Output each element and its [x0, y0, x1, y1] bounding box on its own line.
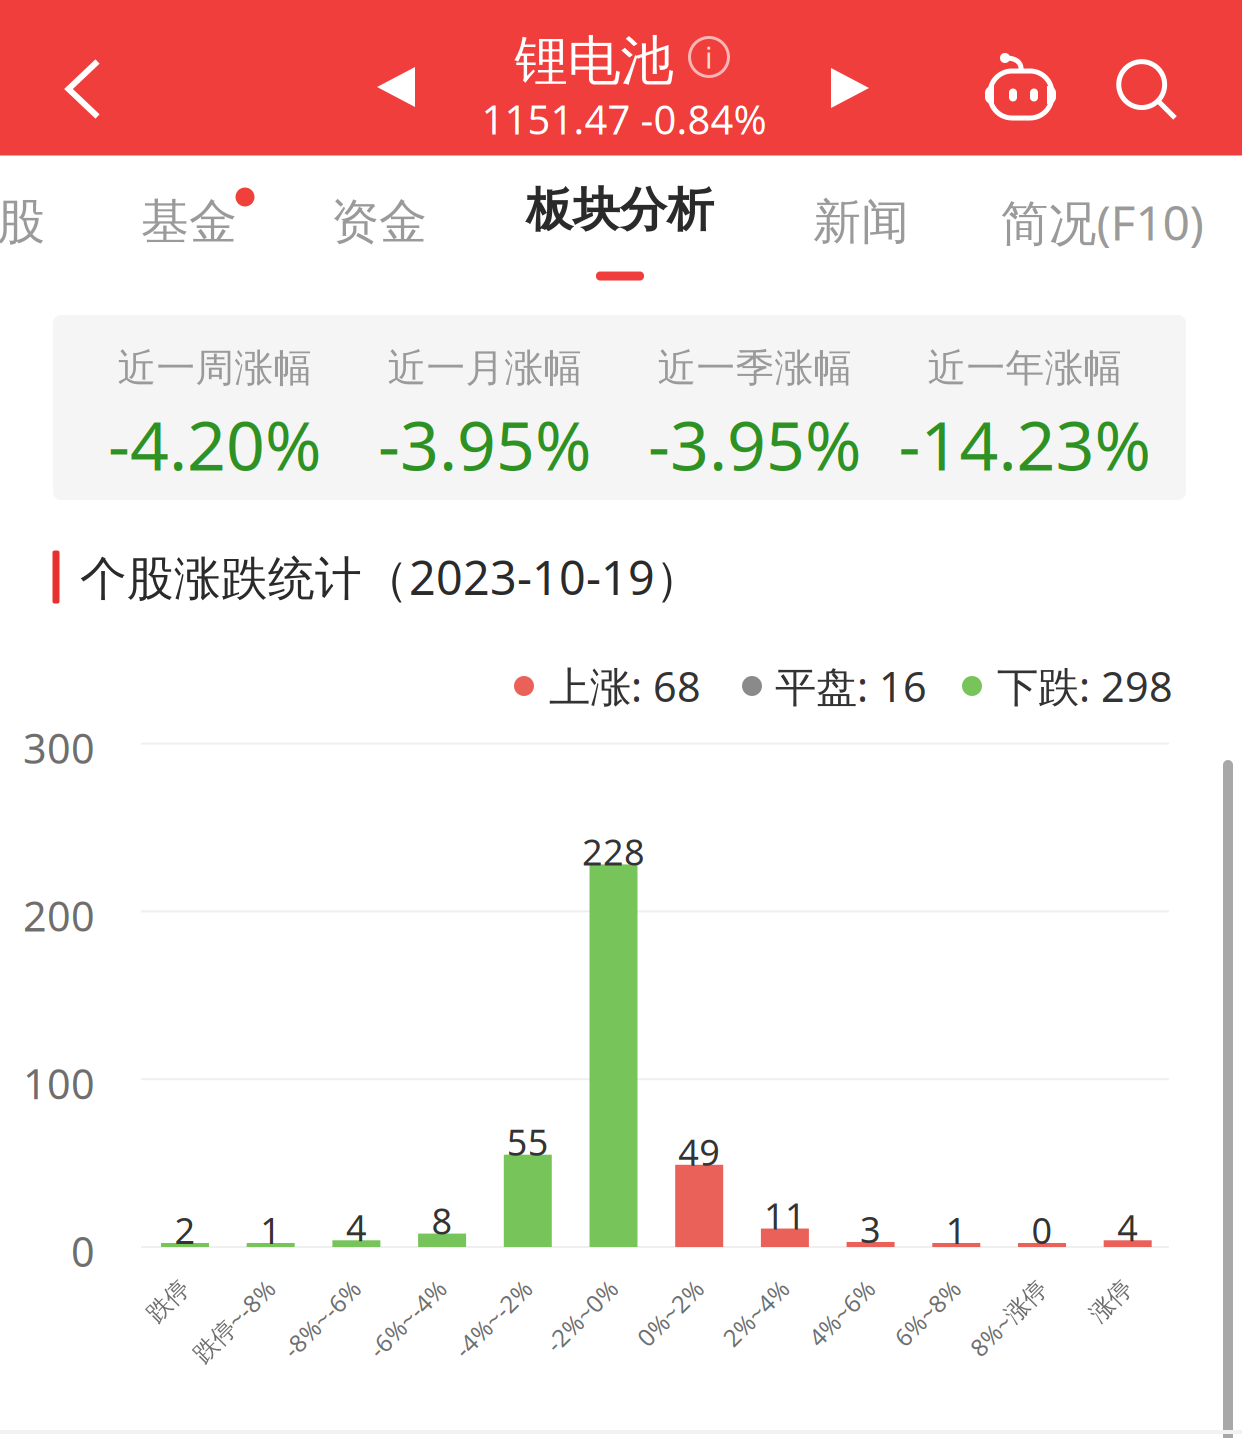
staticText: 228: [582, 827, 645, 875]
staticText: -4.20%: [108, 399, 322, 489]
staticText: -6%~-4%: [332, 1273, 430, 1305]
staticText: 近一月涨幅: [387, 344, 582, 392]
staticText: 上涨: 68: [549, 659, 701, 713]
staticText: 跌停~-8%: [155, 1273, 259, 1305]
button[interactable]: 板块分析: [485, 153, 755, 297]
staticText: -4%~-2%: [418, 1273, 516, 1305]
staticText: 0: [71, 1224, 95, 1278]
staticText: 2%~4%: [691, 1273, 773, 1305]
staticText: -3.95%: [648, 399, 862, 489]
staticText: 简况(F10): [1000, 190, 1203, 254]
button[interactable]: 基金: [104, 160, 274, 284]
button[interactable]: Previous sector: [340, 31, 452, 143]
button[interactable]: Assistant: [951, 28, 1077, 158]
staticText: 新闻: [813, 192, 909, 251]
staticText: -14.23%: [898, 399, 1151, 489]
staticText: 4%~6%: [777, 1273, 859, 1305]
button[interactable]: Next sector: [794, 32, 906, 144]
button[interactable]: Back: [18, 11, 148, 167]
staticText: 个股涨跌统计（2023-10-19）: [80, 546, 702, 608]
staticText: 跌停: [125, 1274, 173, 1304]
staticText: 3: [860, 1205, 881, 1253]
staticText: 11: [764, 1192, 806, 1239]
staticText: 资金: [331, 192, 427, 251]
staticText: -8%~-6%: [246, 1273, 344, 1305]
staticText: 涨停: [1068, 1274, 1116, 1304]
staticText: 1151.47 -0.84%: [481, 92, 766, 145]
staticText: 55: [507, 1118, 549, 1166]
staticText: 股: [0, 192, 45, 251]
staticText: 8: [432, 1197, 453, 1244]
staticText: 基金: [141, 192, 237, 251]
staticText: 近一周涨幅: [117, 344, 312, 392]
staticText: 平盘: 16: [775, 659, 927, 713]
button[interactable]: 股: [0, 160, 81, 284]
staticText: 200: [23, 888, 95, 943]
staticText: 4: [1117, 1203, 1138, 1251]
staticText: 8%~涨停: [934, 1273, 1030, 1305]
staticText: 0%~2%: [605, 1273, 687, 1305]
staticText: 板块分析: [526, 181, 714, 239]
staticText: 4: [346, 1203, 367, 1251]
staticText: -3.95%: [378, 399, 592, 489]
staticText: 100: [23, 1056, 95, 1111]
staticText: 1: [260, 1206, 281, 1254]
staticText: i: [705, 37, 713, 76]
staticText: 49: [678, 1128, 720, 1176]
button[interactable]: 资金: [294, 160, 464, 284]
staticText: -2%~0%: [511, 1273, 601, 1305]
staticText: 近一年涨幅: [927, 344, 1122, 392]
staticText: 锂电池: [514, 28, 673, 94]
staticText: 1: [946, 1206, 967, 1254]
button[interactable]: 新闻: [776, 160, 946, 284]
staticText: 6%~8%: [862, 1273, 944, 1305]
staticText: 0: [1031, 1206, 1052, 1254]
staticText: 近一季涨幅: [657, 344, 852, 392]
staticText: 下跌: 298: [997, 659, 1173, 713]
staticText: 300: [23, 720, 95, 775]
staticText: 2: [174, 1206, 195, 1254]
button[interactable]: 简况(F10): [957, 160, 1242, 284]
button[interactable]: Search: [1085, 25, 1211, 155]
